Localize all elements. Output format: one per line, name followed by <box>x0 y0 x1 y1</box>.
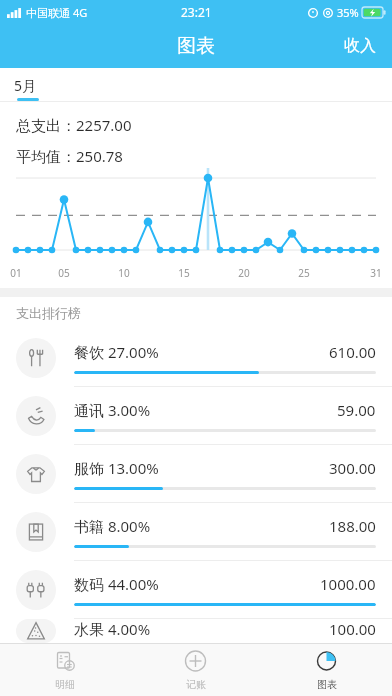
staticText: 1000.00 <box>320 574 376 594</box>
staticText: 35% <box>337 5 359 20</box>
button[interactable]: 收入 <box>328 25 392 67</box>
staticText: 水果 4.00% <box>74 619 151 639</box>
staticText: 23:21 <box>181 4 212 20</box>
staticText: 图表 <box>317 678 337 691</box>
staticText: 4G <box>73 5 88 20</box>
staticText: 平均值：250.78 <box>16 146 123 166</box>
staticText: 59.00 <box>337 400 376 420</box>
button[interactable]: 明细 <box>0 644 130 696</box>
button[interactable]: 水果 4.00% <box>0 619 392 643</box>
staticText: 收入 <box>344 36 376 56</box>
staticText: 图表 <box>177 34 215 58</box>
staticText: 300.00 <box>329 458 376 478</box>
staticText: 15 <box>175 266 193 280</box>
staticText: 支出排行榜 <box>16 305 81 321</box>
staticText: 数码 44.00% <box>74 574 159 594</box>
staticText: 100.00 <box>329 619 376 639</box>
staticText: 31 <box>367 266 385 280</box>
button[interactable]: 数码 44.00% <box>0 561 392 619</box>
staticText: 服饰 13.00% <box>74 458 159 478</box>
staticText: 20 <box>235 266 253 280</box>
staticText: 01 <box>7 266 25 280</box>
staticText: 总支出：2257.00 <box>16 115 132 135</box>
staticText: 5月 <box>14 76 37 95</box>
staticText: 书籍 8.00% <box>74 516 151 536</box>
staticText: 记账 <box>186 678 206 691</box>
button[interactable]: 图表 <box>261 644 392 696</box>
button[interactable]: 餐饮 27.00% <box>0 329 392 387</box>
staticText: 通讯 3.00% <box>74 400 151 420</box>
staticText: 10 <box>115 266 133 280</box>
staticText: 中国联通 <box>26 6 70 20</box>
staticText: 餐饮 27.00% <box>74 342 159 362</box>
staticText: 25 <box>295 266 313 280</box>
button[interactable]: 服饰 13.00% <box>0 445 392 503</box>
staticText: 188.00 <box>329 516 376 536</box>
button[interactable]: 记账 <box>130 644 261 696</box>
button[interactable]: 书籍 8.00% <box>0 503 392 561</box>
button[interactable]: 通讯 3.00% <box>0 387 392 445</box>
staticText: 明细 <box>55 678 75 691</box>
staticText: 05 <box>55 266 73 280</box>
button[interactable]: 5月 <box>0 71 51 100</box>
staticText: 610.00 <box>329 342 376 362</box>
